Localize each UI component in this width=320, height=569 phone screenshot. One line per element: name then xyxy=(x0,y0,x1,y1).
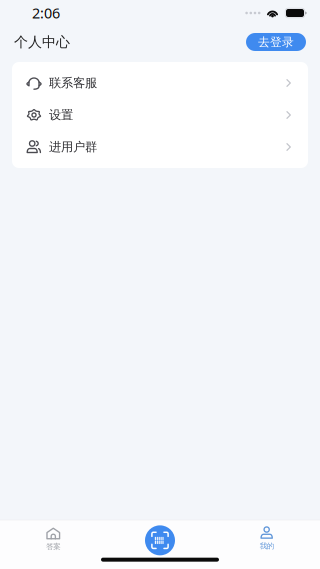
staticText: 联系客服 xyxy=(49,75,97,91)
button[interactable]: 设置 xyxy=(12,99,308,131)
staticText: 去登录 xyxy=(258,35,294,49)
staticText: 进用户群 xyxy=(49,139,97,155)
staticText: 2:06 xyxy=(32,3,60,23)
button[interactable]: 我的 xyxy=(213,520,320,569)
staticText: 设置 xyxy=(49,107,73,123)
staticText: 我的 xyxy=(260,541,274,551)
button[interactable]: 联系客服 xyxy=(12,67,308,99)
staticText: 个人中心 xyxy=(14,33,70,51)
staticText: 答案 xyxy=(46,542,60,551)
button[interactable]: 进用户群 xyxy=(12,131,308,163)
button[interactable]: 扫一扫 xyxy=(107,520,213,569)
button[interactable]: 答案 xyxy=(0,520,107,569)
button[interactable]: 去登录 xyxy=(246,33,306,51)
